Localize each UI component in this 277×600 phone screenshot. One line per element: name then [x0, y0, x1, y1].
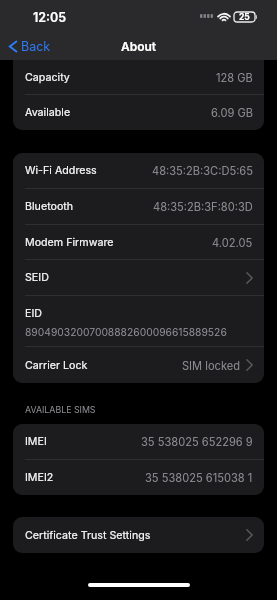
staticText: 48:35:2B:3C:D5:65 — [152, 164, 253, 177]
staticText: 25 — [239, 12, 250, 22]
staticText: Wi-Fi Address — [25, 164, 97, 177]
button[interactable]: Available — [13, 95, 264, 130]
staticText: SEID — [25, 271, 49, 284]
staticText: 12:05 — [33, 10, 67, 25]
staticText: Capacity — [25, 71, 70, 84]
button[interactable]: Carrier Lock — [13, 347, 264, 383]
staticText: 128 GB — [216, 71, 253, 84]
staticText: 48:35:2B:3F:80:3D — [153, 200, 253, 213]
button[interactable]: Back — [0, 34, 61, 59]
staticText: EID — [25, 307, 43, 320]
staticText: 35 538025 652296 9 — [141, 435, 253, 448]
button[interactable]: IMEI — [13, 424, 264, 459]
button[interactable]: SEID — [13, 260, 264, 295]
button[interactable]: Wi-Fi Address — [13, 153, 264, 188]
staticText: 35 538025 615038 1 — [145, 471, 253, 484]
staticText: 6.09 GB — [211, 106, 253, 119]
staticText: SIM locked — [182, 359, 241, 372]
staticText: 4.02.05 — [212, 236, 253, 249]
staticText: Modem Firmware — [25, 236, 114, 249]
staticText: IMEI2 — [25, 471, 54, 484]
button[interactable]: IMEI2 — [13, 460, 264, 495]
staticText: AVAILABLE SIMS — [25, 404, 96, 415]
button[interactable]: Modem Firmware — [13, 225, 264, 259]
staticText: Available — [25, 106, 71, 119]
staticText: Bluetooth — [25, 200, 74, 213]
staticText: Back — [21, 39, 51, 54]
button[interactable]: Bluetooth — [13, 189, 264, 224]
staticText: About — [121, 39, 157, 54]
staticText: 89049032007008882600096615889526 — [25, 326, 227, 338]
staticText: Certificate Trust Settings — [25, 529, 151, 542]
button[interactable]: Certificate Trust Settings — [13, 517, 264, 553]
staticText: Carrier Lock — [25, 359, 88, 372]
button[interactable]: EID — [13, 296, 264, 346]
staticText: IMEI — [25, 435, 47, 448]
button[interactable]: Capacity — [13, 60, 264, 94]
